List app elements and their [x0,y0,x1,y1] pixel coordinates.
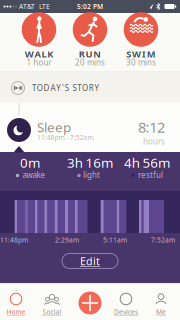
staticText: hours [143,136,165,147]
staticText: SWIM [126,48,156,60]
button[interactable] [78,291,101,314]
staticText: AT&T LTE [19,2,50,11]
staticText: 4h 56m [124,154,170,171]
staticText: Devices [114,308,138,316]
button[interactable]: Home [0,287,33,319]
staticText: light [83,170,100,180]
button[interactable]: TODAY'S STORY [0,72,180,102]
button[interactable]: Social [35,287,69,319]
staticText: Edit [80,254,100,268]
button[interactable]: WALK [14,12,64,68]
staticText: 5:02 PM [77,2,103,11]
button[interactable]: SWIM [116,12,166,68]
staticText: 0m [20,154,40,171]
staticText: 8:12 [138,117,165,137]
staticText: 5:11am [103,236,127,244]
staticText: Me [156,308,166,316]
staticText: 30 mins [126,57,156,68]
staticText: Sleep [37,118,71,136]
button[interactable]: Sleep [0,103,180,152]
staticText: 1 hour [26,57,51,68]
staticText: 2:29am [55,236,79,244]
staticText: 11:48pm [0,236,28,244]
staticText: restful [138,170,163,180]
button[interactable]: Devices [109,287,143,319]
staticText: awake [22,170,45,180]
staticText: 20 mins [75,57,105,68]
button[interactable]: RUN [65,12,115,68]
staticText: WALK [25,48,53,60]
staticText: TODAY'S STORY [32,83,100,93]
staticText: 7:52am [151,236,175,244]
staticText: 11:48pm - 7:52am [37,133,93,142]
button[interactable]: Edit [62,253,118,268]
button[interactable]: Me [144,287,178,319]
staticText: Social [42,308,61,316]
staticText: RUN [79,48,101,60]
staticText: Home [6,308,25,316]
staticText: 3h 16m [67,154,113,171]
